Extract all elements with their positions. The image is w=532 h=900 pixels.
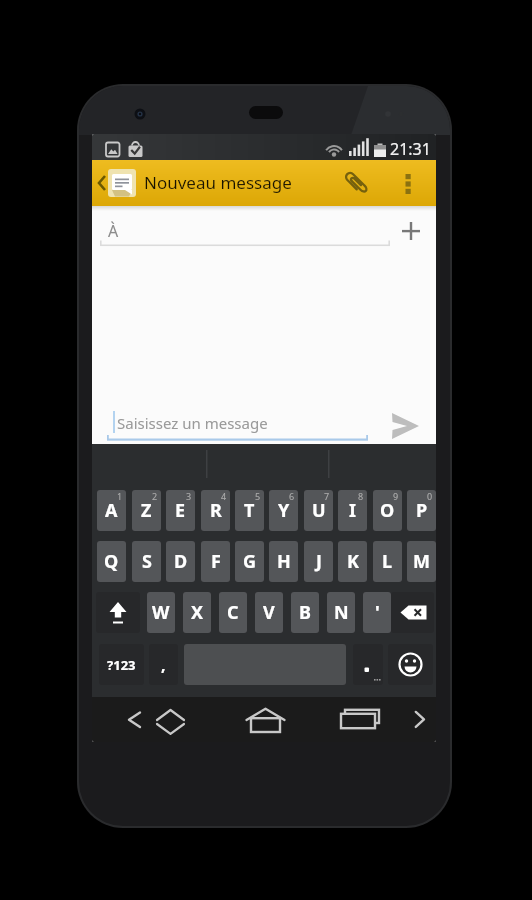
button[interactable]: , — [149, 644, 178, 685]
button[interactable]: Y — [269, 490, 298, 531]
button[interactable]: T — [235, 490, 264, 531]
button[interactable] — [391, 592, 434, 633]
button[interactable]: Q — [97, 541, 126, 582]
staticText: E — [175, 498, 186, 523]
staticText: S — [142, 549, 152, 574]
staticText: P — [416, 498, 428, 523]
staticText: 3 — [186, 490, 192, 502]
button[interactable]: H — [269, 541, 298, 582]
button[interactable]: A — [97, 490, 126, 531]
button[interactable]: Saisissez un message — [107, 404, 368, 440]
button[interactable] — [114, 704, 156, 735]
button[interactable] — [404, 704, 432, 735]
staticText: U — [312, 498, 326, 523]
button[interactable]: W — [147, 592, 175, 633]
staticText: ' — [375, 600, 380, 625]
staticText: L — [382, 549, 393, 574]
staticText: Y — [278, 498, 290, 523]
staticText: Q — [104, 549, 119, 574]
button[interactable]: P — [407, 490, 436, 531]
button[interactable]: S — [132, 541, 161, 582]
button[interactable]: R — [201, 490, 230, 531]
button[interactable] — [337, 704, 381, 735]
staticText: B — [299, 600, 311, 625]
button[interactable]: X — [183, 592, 211, 633]
button[interactable]: U — [304, 490, 333, 531]
button[interactable]: I — [338, 490, 367, 531]
staticText: M — [413, 549, 430, 574]
staticText: 9 — [393, 490, 399, 502]
staticText: 0 — [427, 490, 433, 502]
button[interactable]: J — [304, 541, 333, 582]
button[interactable]: E — [166, 490, 195, 531]
button[interactable]: M — [407, 541, 436, 582]
staticText: 8 — [358, 490, 364, 502]
button[interactable]: À — [100, 212, 390, 248]
staticText: C — [227, 600, 239, 625]
staticText: Saisissez un message — [117, 413, 268, 433]
staticText: 2 — [152, 490, 158, 502]
staticText: O — [380, 498, 395, 523]
button[interactable] — [150, 704, 192, 735]
staticText: 5 — [255, 490, 261, 502]
button[interactable]: L — [373, 541, 402, 582]
staticText: Z — [141, 498, 152, 523]
staticText: À — [108, 220, 119, 242]
staticText: 21:31 — [390, 138, 431, 160]
staticText: R — [210, 498, 222, 523]
staticText: V — [263, 600, 275, 625]
staticText: N — [334, 600, 349, 625]
button[interactable]: O — [373, 490, 402, 531]
staticText: J — [316, 549, 322, 574]
button[interactable]: ' — [363, 592, 391, 633]
button[interactable]: ?123 — [99, 644, 144, 685]
staticText: W — [152, 600, 170, 625]
button[interactable]: G — [235, 541, 264, 582]
staticText: T — [244, 498, 255, 523]
button[interactable] — [242, 704, 289, 735]
button[interactable] — [353, 644, 383, 685]
staticText: 4 — [221, 490, 227, 502]
button[interactable] — [384, 406, 428, 442]
button[interactable]: F — [201, 541, 230, 582]
staticText: F — [211, 549, 221, 574]
button[interactable]: V — [255, 592, 283, 633]
staticText: 7 — [324, 490, 330, 502]
button[interactable] — [338, 160, 378, 206]
button[interactable]: B — [291, 592, 319, 633]
staticText: H — [277, 549, 291, 574]
button[interactable]: Z — [132, 490, 161, 531]
button[interactable]: D — [166, 541, 195, 582]
button[interactable] — [96, 592, 140, 633]
staticText: 1 — [117, 490, 123, 502]
staticText: X — [191, 600, 204, 625]
button[interactable] — [92, 160, 138, 206]
button[interactable]: K — [338, 541, 367, 582]
staticText: D — [174, 549, 188, 574]
button[interactable] — [388, 644, 433, 685]
staticText: I — [349, 498, 357, 523]
button[interactable] — [392, 160, 426, 206]
staticText: , — [161, 654, 166, 676]
staticText: ?123 — [107, 656, 136, 674]
button[interactable]: C — [219, 592, 247, 633]
button[interactable]: N — [327, 592, 355, 633]
staticText: 6 — [289, 490, 295, 502]
staticText: Nouveau message — [144, 171, 292, 194]
staticText: A — [105, 498, 118, 523]
staticText: K — [347, 549, 359, 574]
staticText: G — [243, 549, 257, 574]
